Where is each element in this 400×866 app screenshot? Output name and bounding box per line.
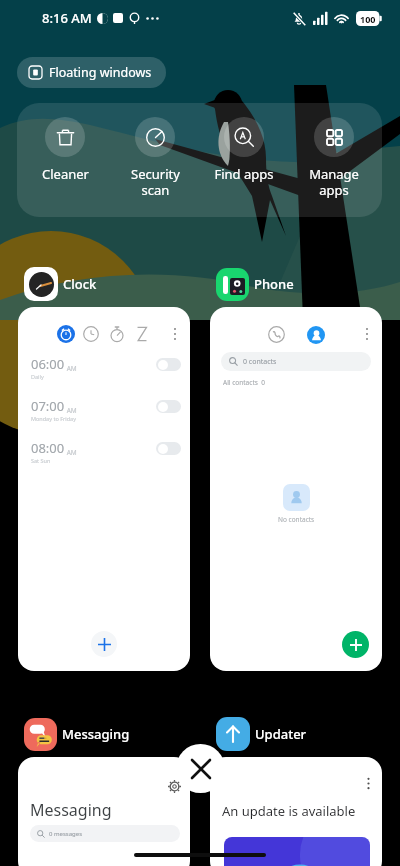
button[interactable]: Phone (216, 267, 294, 301)
button[interactable]: Toggle alarm (156, 442, 181, 455)
button[interactable]: More options (210, 757, 382, 866)
button[interactable]: Add contact (342, 631, 369, 658)
button[interactable]: 06:00 (18, 355, 190, 389)
button[interactable]: Alarm tab (57, 325, 75, 343)
button[interactable]: Updater (216, 717, 307, 751)
button[interactable]: Contacts tab (307, 326, 325, 344)
button[interactable]: Manage apps (293, 103, 375, 217)
staticText: 07:00 (31, 397, 65, 415)
button[interactable]: Recents tab (210, 307, 382, 671)
button[interactable]: Add alarm (91, 631, 117, 657)
button[interactable]: Recents tab (268, 326, 285, 343)
staticText: AM (65, 364, 77, 373)
staticText: Daily (31, 373, 44, 380)
staticText: 8:16 AM (42, 9, 92, 27)
staticText: Sat Sun (31, 457, 51, 464)
staticText: Security scan (131, 165, 180, 198)
button[interactable]: Stopwatch tab (109, 326, 125, 342)
button[interactable]: Close all (176, 744, 225, 793)
staticText: Clock (63, 275, 97, 293)
staticText: An update is available (222, 802, 356, 820)
button[interactable]: Toggle alarm (156, 400, 181, 413)
staticText: 06:00 (31, 355, 65, 373)
staticText: 0 contacts (243, 357, 277, 367)
staticText: Messaging (62, 725, 130, 743)
button[interactable]: Floating windows (17, 57, 166, 88)
button[interactable]: 08:00 (18, 439, 190, 473)
staticText: Manage apps (309, 165, 359, 198)
button[interactable]: More options (362, 777, 375, 790)
staticText: Find apps (214, 165, 274, 183)
button[interactable]: More options (168, 327, 182, 341)
button[interactable]: More options (360, 327, 374, 341)
button[interactable]: 0 messages (30, 825, 180, 842)
staticText: Messaging (30, 799, 112, 821)
button[interactable]: Messaging (24, 717, 130, 751)
staticText: 08:00 (31, 439, 65, 457)
staticText: 100 (360, 13, 376, 25)
staticText: Cleaner (42, 165, 89, 183)
button[interactable]: World clock tab (83, 326, 99, 342)
staticText: AM (65, 448, 77, 457)
button[interactable]: Alarm tab (18, 307, 190, 671)
button[interactable]: Timer tab (134, 326, 150, 342)
staticText: Floating windows (49, 64, 152, 81)
staticText: All contacts 0 (223, 378, 265, 387)
staticText: No contacts (278, 515, 315, 524)
staticText: 0 messages (49, 830, 83, 838)
button[interactable]: Find apps (203, 103, 285, 217)
button[interactable]: 0 contacts (221, 352, 371, 371)
button[interactable]: Toggle alarm (156, 358, 181, 371)
staticText: Monday to Friday (31, 415, 76, 422)
staticText: Phone (254, 275, 294, 293)
button[interactable]: Cleaner (24, 103, 106, 217)
button[interactable]: 07:00 (18, 397, 190, 431)
button[interactable]: Settings (18, 757, 190, 866)
button[interactable]: Clock (24, 267, 97, 301)
staticText: Updater (255, 725, 307, 743)
staticText: AM (65, 406, 77, 415)
button[interactable]: Security scan (114, 103, 196, 217)
button[interactable]: Settings (168, 780, 181, 793)
